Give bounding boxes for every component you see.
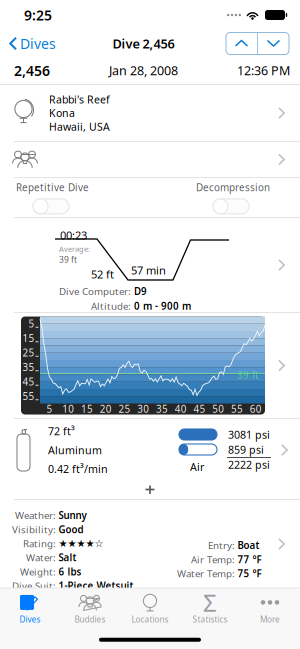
staticText: D9 <box>134 285 147 298</box>
staticText: 57 min <box>131 263 166 277</box>
button[interactable]: Dives <box>0 588 60 626</box>
staticText: Weight: <box>20 565 56 578</box>
staticText: Dive 2,456 <box>112 35 174 52</box>
staticText: 55 <box>22 390 34 403</box>
staticText: 72 ft³ <box>48 424 75 438</box>
staticText: 39 ft <box>237 368 259 381</box>
staticText: 60 <box>250 403 262 415</box>
staticText: Repetitive Dive <box>16 181 89 194</box>
staticText: Rating: <box>23 537 56 550</box>
button[interactable]: More <box>240 588 300 626</box>
staticText: Decompression <box>196 181 270 194</box>
button[interactable]: Dives <box>9 30 61 56</box>
staticText: Jan 28, 2008 <box>109 62 178 79</box>
staticText: 20 <box>100 403 112 415</box>
staticText: 55 <box>231 403 243 415</box>
staticText: 35 <box>156 403 168 415</box>
button[interactable]: Rabbi's Reef <box>0 85 300 141</box>
staticText: 0 m - 900 m <box>134 300 191 312</box>
staticText: Locations <box>131 614 168 625</box>
staticText: 39 ft <box>59 254 77 265</box>
staticText: Aluminum <box>48 443 102 457</box>
button[interactable]: Depth chart <box>0 313 300 418</box>
staticText: Water: <box>26 551 56 564</box>
staticText: 25 <box>22 346 34 359</box>
staticText: More <box>260 614 280 625</box>
staticText: 0.42 ft³/min <box>48 462 108 476</box>
staticText: 77 °F <box>237 553 261 566</box>
staticText: Dives <box>19 614 40 625</box>
staticText: 5 <box>46 403 52 415</box>
staticText: Boat <box>237 539 259 552</box>
staticText: Buddies <box>74 614 105 625</box>
staticText: Sunny <box>58 509 86 522</box>
staticText: 15 <box>81 403 93 415</box>
staticText: Average: <box>59 244 90 254</box>
button[interactable]: Previous dive <box>226 32 257 54</box>
staticText: 75 °F <box>237 567 261 580</box>
button[interactable]: Dive details <box>0 500 300 588</box>
staticText: 45 <box>22 375 34 388</box>
staticText: 52 ft <box>91 267 114 281</box>
button[interactable]: Buddies <box>0 142 300 177</box>
staticText: 1-Piece Wetsuit <box>58 579 133 592</box>
staticText: 3081 psi <box>228 428 270 441</box>
staticText: Altitude: <box>91 300 131 312</box>
staticText: Air <box>190 460 204 474</box>
staticText: 25 <box>118 403 130 415</box>
staticText: 15 <box>22 332 34 345</box>
button[interactable]: Locations <box>120 588 180 626</box>
staticText: Statistics <box>192 614 227 625</box>
button[interactable]: Add tank <box>0 481 300 499</box>
staticText: 6 lbs <box>58 565 81 578</box>
staticText: Water Temp: <box>177 567 235 580</box>
staticText: Entry: <box>208 539 235 552</box>
staticText: Kona <box>49 106 75 120</box>
staticText: 00:23 <box>60 228 87 242</box>
staticText: 2222 psi <box>228 458 270 471</box>
staticText: Σ <box>203 586 217 618</box>
staticText: 40 <box>175 403 187 415</box>
staticText: 10 <box>62 403 74 415</box>
button[interactable]: Tank details <box>0 419 300 481</box>
staticText: Good <box>58 523 83 536</box>
button[interactable]: Next dive <box>258 32 289 54</box>
button[interactable]: Dive profile <box>0 218 300 312</box>
staticText: 50 <box>212 403 224 415</box>
staticText: Dives <box>20 34 56 52</box>
staticText: Weather: <box>15 509 56 522</box>
button[interactable]: Buddies <box>60 588 120 626</box>
staticText: ★★★★☆ <box>58 538 103 549</box>
staticText: 2,456 <box>14 61 50 79</box>
button[interactable]: Σ <box>180 588 240 626</box>
staticText: 30 <box>137 403 149 415</box>
staticText: 5 <box>28 317 34 330</box>
staticText: 35 <box>22 361 34 374</box>
staticText: Hawaii, USA <box>49 120 110 133</box>
staticText: Air Temp: <box>191 553 235 566</box>
staticText: 859 psi <box>228 443 264 456</box>
staticText: Dive Computer: <box>59 285 131 298</box>
staticText: 9:25 <box>24 6 52 24</box>
staticText: Rabbi's Reef <box>49 93 110 106</box>
staticText: Dive Suit: <box>12 579 56 592</box>
staticText: Salt <box>58 551 76 564</box>
staticText: 12:36 PM <box>237 62 290 79</box>
staticText: Visibility: <box>12 523 56 536</box>
staticText: 45 <box>193 403 205 415</box>
